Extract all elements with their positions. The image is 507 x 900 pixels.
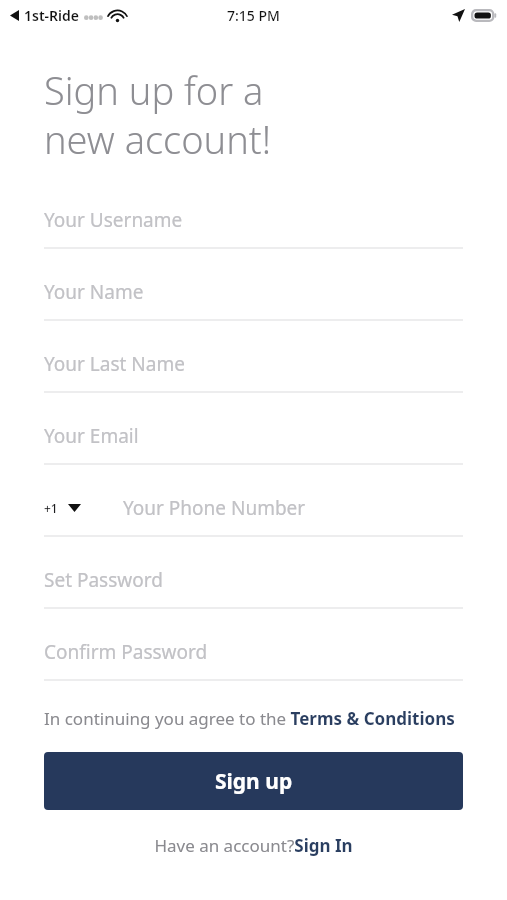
staticText: Sign up bbox=[215, 767, 293, 796]
button[interactable]: Your Email bbox=[44, 409, 463, 465]
staticText: In continuing you agree to the Terms & C… bbox=[44, 707, 455, 730]
button[interactable]: Confirm Password bbox=[44, 625, 463, 681]
staticText: 1st-Ride bbox=[24, 6, 79, 25]
button[interactable]: Your Last Name bbox=[44, 337, 463, 393]
button[interactable]: Sign up bbox=[44, 752, 463, 810]
staticText: +1 bbox=[44, 500, 58, 516]
staticText: Your Name bbox=[44, 279, 144, 305]
button[interactable]: Your Phone Number bbox=[123, 495, 463, 521]
staticText: Your Username bbox=[44, 207, 183, 233]
staticText: Set Password bbox=[44, 567, 163, 593]
button[interactable]: Have an account?Sign In bbox=[154, 834, 353, 857]
button[interactable]: Select country code bbox=[44, 500, 81, 516]
button[interactable]: Your Name bbox=[44, 265, 463, 321]
staticText: Sign up for a new account! bbox=[44, 64, 272, 165]
button[interactable]: Your Username bbox=[44, 193, 463, 249]
button[interactable]: Set Password bbox=[44, 553, 463, 609]
staticText: Have an account?Sign In bbox=[154, 834, 353, 857]
staticText: Your Last Name bbox=[44, 351, 185, 377]
staticText: Your Email bbox=[44, 423, 139, 449]
button[interactable]: In continuing you agree to the Terms & C… bbox=[44, 707, 463, 730]
staticText: 7:15 PM bbox=[227, 6, 280, 25]
staticText: Confirm Password bbox=[44, 639, 208, 665]
staticText: Your Phone Number bbox=[123, 495, 306, 521]
